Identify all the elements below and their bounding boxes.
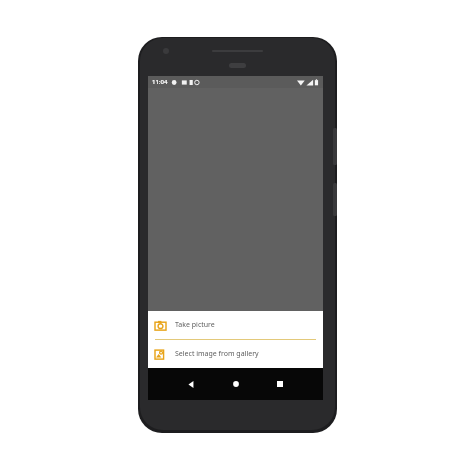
staticText: Select image from gallery	[175, 349, 259, 359]
button[interactable]: Back	[179, 372, 203, 396]
button[interactable]: Recent apps	[268, 372, 292, 396]
button[interactable]: Home	[224, 372, 248, 396]
button[interactable]: Take picture	[148, 311, 323, 339]
staticText: 11:04	[152, 78, 168, 86]
staticText: Take picture	[175, 320, 215, 330]
button[interactable]: Select image from gallery	[148, 340, 323, 368]
